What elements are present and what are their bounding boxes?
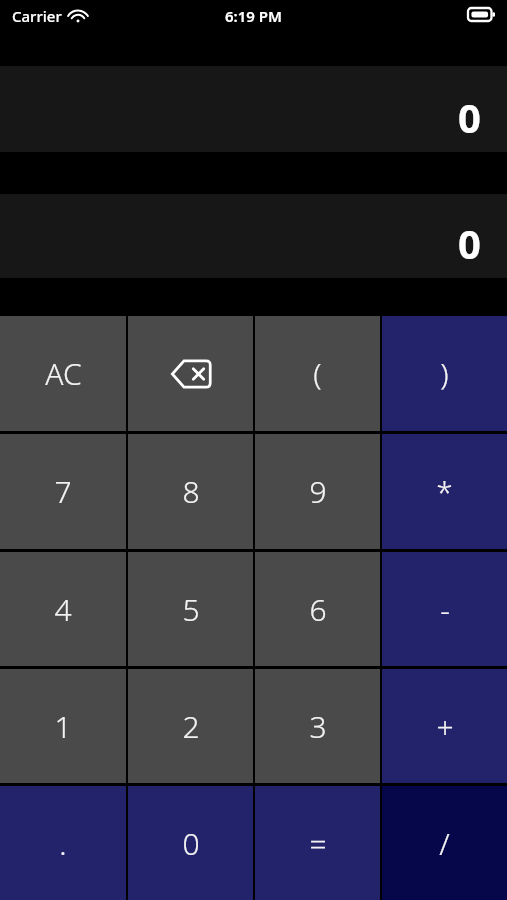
button[interactable]: AC — [0, 316, 126, 431]
staticText: 1 — [54, 706, 72, 747]
button[interactable]: 5 — [128, 552, 253, 666]
staticText: 5 — [182, 589, 200, 630]
staticText: ) — [440, 353, 449, 394]
staticText: 9 — [309, 471, 327, 512]
staticText: AC — [45, 353, 82, 394]
button[interactable]: / — [382, 786, 507, 900]
button[interactable]: - — [382, 552, 507, 666]
button[interactable]: 2 — [128, 669, 253, 783]
staticText: 0 — [458, 90, 481, 144]
button[interactable]: 7 — [0, 434, 126, 549]
staticText: 6 — [309, 589, 327, 630]
button[interactable]: 1 — [0, 669, 126, 783]
button[interactable]: 8 — [128, 434, 253, 549]
button[interactable]: 0 — [128, 786, 253, 900]
staticText: 7 — [54, 471, 72, 512]
staticText: 6:19 PM — [225, 6, 282, 26]
staticText: 0 — [182, 823, 200, 864]
staticText: + — [436, 706, 454, 747]
staticText: 2 — [182, 706, 200, 747]
button[interactable]: = — [255, 786, 380, 900]
staticText: . — [59, 823, 67, 864]
button[interactable]: 3 — [255, 669, 380, 783]
staticText: / — [439, 823, 450, 864]
staticText: Carrier — [12, 6, 62, 26]
staticText: 3 — [309, 706, 327, 747]
button[interactable]: 6 — [255, 552, 380, 666]
button[interactable]: + — [382, 669, 507, 783]
button[interactable]: ) — [382, 316, 507, 431]
button[interactable]: 4 — [0, 552, 126, 666]
button[interactable]: . — [0, 786, 126, 900]
staticText: - — [440, 589, 450, 630]
button[interactable]: 9 — [255, 434, 380, 549]
button[interactable]: Backspace — [128, 316, 253, 431]
staticText: 8 — [182, 471, 200, 512]
staticText: ( — [313, 353, 322, 394]
button[interactable]: * — [382, 434, 507, 549]
staticText: 0 — [458, 216, 481, 270]
staticText: 4 — [54, 589, 72, 630]
staticText: * — [436, 471, 453, 512]
staticText: = — [309, 823, 327, 864]
button[interactable]: ( — [255, 316, 380, 431]
